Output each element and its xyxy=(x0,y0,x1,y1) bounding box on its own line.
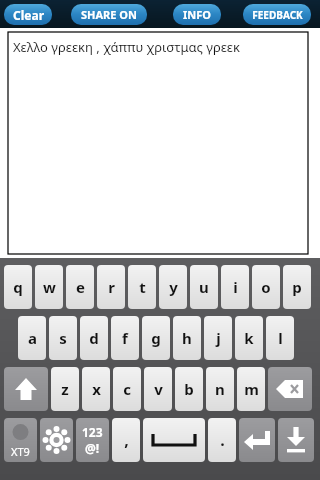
button[interactable]: Χελλο γρεεκη , χάππυ χριστμας γρεεκ xyxy=(8,32,308,254)
staticText: h xyxy=(182,328,192,348)
staticText: m xyxy=(244,379,259,399)
button[interactable]: w xyxy=(35,265,63,309)
staticText: s xyxy=(59,328,67,348)
staticText: c xyxy=(123,379,131,399)
button[interactable]: u xyxy=(190,265,218,309)
button[interactable]: Keyboard settings xyxy=(40,418,73,462)
button[interactable]: Clear xyxy=(4,4,52,25)
button[interactable]: FEEDBACK xyxy=(243,4,311,25)
staticText: y xyxy=(169,277,178,297)
staticText: x xyxy=(92,379,101,399)
button[interactable]: Space xyxy=(143,418,205,462)
staticText: l xyxy=(278,328,283,348)
button[interactable]: z xyxy=(51,367,79,411)
staticText: r xyxy=(108,277,115,297)
staticText: INFO xyxy=(183,7,211,22)
button[interactable]: SHARE ON xyxy=(71,4,147,25)
staticText: a xyxy=(28,328,37,348)
staticText: f xyxy=(122,328,128,348)
button[interactable]: o xyxy=(252,265,280,309)
button[interactable]: x xyxy=(82,367,110,411)
staticText: , xyxy=(124,429,129,451)
staticText: q xyxy=(13,277,23,297)
button[interactable]: p xyxy=(283,265,311,309)
staticText: Χελλο γρεεκη , χάππυ χριστμας γρεεκ xyxy=(13,38,240,56)
staticText: v xyxy=(154,379,163,399)
staticText: k xyxy=(244,328,254,348)
staticText: g xyxy=(151,328,161,348)
staticText: SHARE ON xyxy=(81,7,137,22)
button[interactable]: Shift xyxy=(4,367,48,411)
button[interactable]: j xyxy=(204,316,232,360)
staticText: e xyxy=(76,277,85,297)
button[interactable]: v xyxy=(144,367,172,411)
button[interactable]: b xyxy=(175,367,203,411)
button[interactable]: i xyxy=(221,265,249,309)
staticText: @! xyxy=(85,440,100,456)
staticText: 123 xyxy=(82,424,103,440)
button[interactable]: a xyxy=(18,316,46,360)
button[interactable]: c xyxy=(113,367,141,411)
staticText: w xyxy=(43,277,56,297)
button[interactable]: XT9 prediction toggle xyxy=(4,418,37,462)
staticText: d xyxy=(89,328,99,348)
button[interactable]: Backspace xyxy=(268,367,312,411)
button[interactable]: m xyxy=(237,367,265,411)
button[interactable]: INFO xyxy=(173,4,221,25)
button[interactable]: q xyxy=(4,265,32,309)
button[interactable]: Hide keyboard xyxy=(278,418,314,462)
button[interactable]: e xyxy=(66,265,94,309)
button[interactable]: n xyxy=(206,367,234,411)
button[interactable]: t xyxy=(128,265,156,309)
staticText: t xyxy=(139,277,146,297)
staticText: XT9 xyxy=(11,444,30,459)
button[interactable]: s xyxy=(49,316,77,360)
staticText: Clear xyxy=(13,7,44,23)
staticText: z xyxy=(61,379,69,399)
staticText: o xyxy=(261,277,271,297)
button[interactable]: h xyxy=(173,316,201,360)
button[interactable]: Enter xyxy=(239,418,275,462)
staticText: u xyxy=(199,277,209,297)
button[interactable]: r xyxy=(97,265,125,309)
staticText: b xyxy=(184,379,194,399)
button[interactable]: 123 xyxy=(76,418,109,462)
staticText: n xyxy=(215,379,225,399)
staticText: . xyxy=(220,429,225,451)
staticText: FEEDBACK xyxy=(252,8,303,22)
button[interactable]: l xyxy=(266,316,294,360)
button[interactable]: g xyxy=(142,316,170,360)
button[interactable]: , xyxy=(112,418,140,462)
button[interactable]: d xyxy=(80,316,108,360)
staticText: p xyxy=(292,277,302,297)
staticText: i xyxy=(233,277,238,297)
button[interactable]: y xyxy=(159,265,187,309)
button[interactable]: k xyxy=(235,316,263,360)
staticText: j xyxy=(216,328,221,348)
button[interactable]: f xyxy=(111,316,139,360)
button[interactable]: . xyxy=(208,418,236,462)
